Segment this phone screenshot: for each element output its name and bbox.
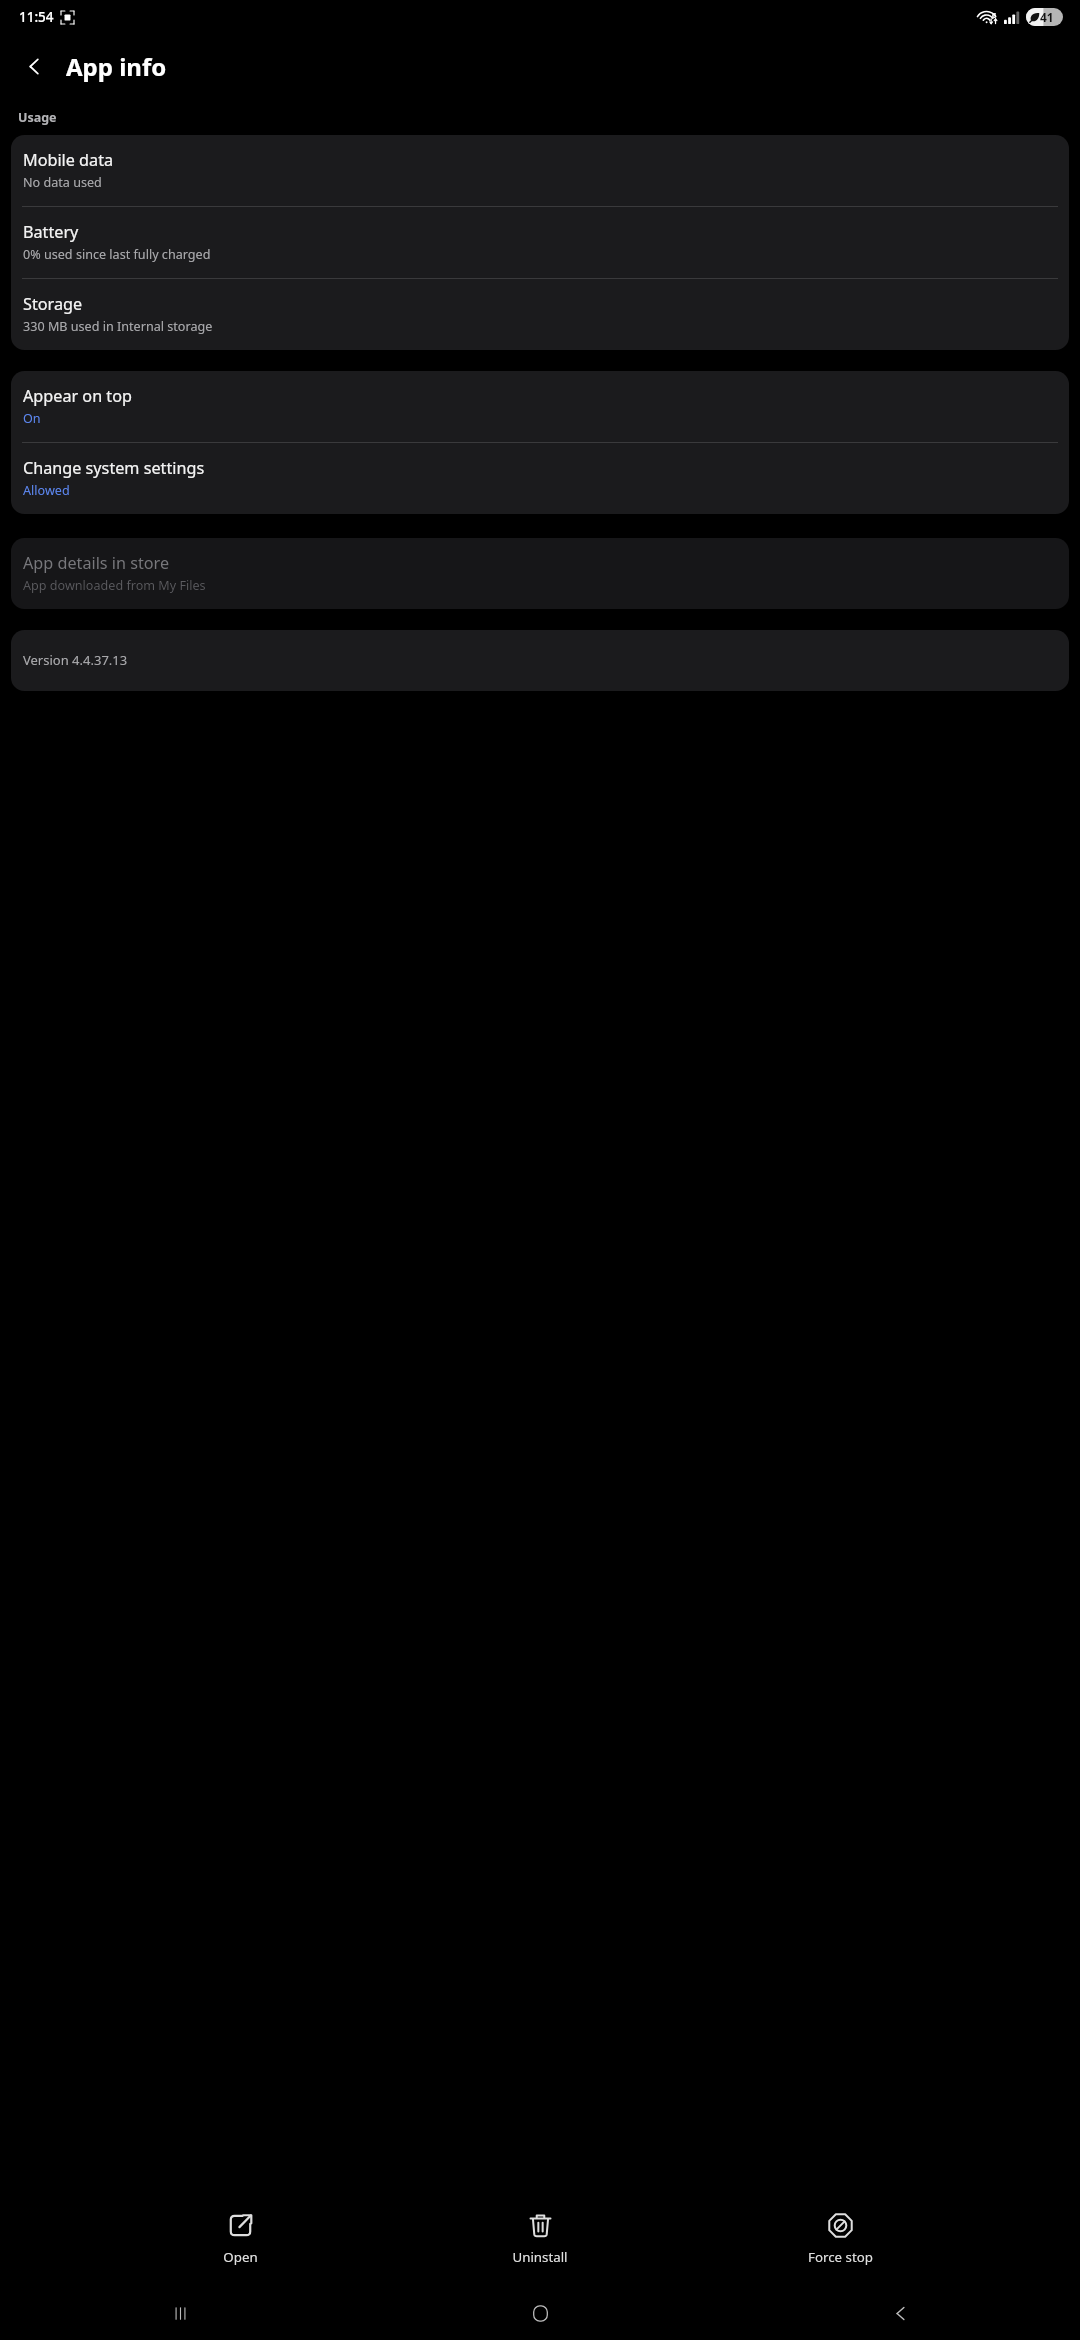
button[interactable]: Storage	[11, 279, 1069, 350]
staticText: 330 MB used in Internal storage	[23, 318, 213, 335]
staticText: Uninstall	[512, 2248, 568, 2266]
staticText: On	[23, 410, 41, 427]
staticText: 6	[992, 10, 997, 20]
staticText: Open	[223, 2248, 258, 2266]
staticText: Version 4.4.37.13	[23, 651, 128, 669]
staticText: Battery	[23, 221, 79, 243]
staticText: App info	[66, 50, 167, 83]
staticText: 41	[1040, 9, 1054, 25]
button[interactable]: Change system settings	[11, 443, 1069, 514]
button[interactable]: Mobile data	[11, 135, 1069, 206]
button[interactable]: Home	[360, 2286, 720, 2340]
button[interactable]: Force stop	[780, 2206, 900, 2272]
staticText: Mobile data	[23, 149, 114, 171]
button[interactable]: Open	[180, 2206, 300, 2272]
button[interactable]: App details in store	[11, 538, 1069, 609]
button[interactable]: Back	[720, 2286, 1080, 2340]
button[interactable]: Appear on top	[11, 371, 1069, 442]
button[interactable]: Recent apps	[0, 2286, 360, 2340]
staticText: Force stop	[808, 2248, 873, 2266]
staticText: No data used	[23, 174, 102, 191]
staticText: App downloaded from My Files	[23, 577, 206, 594]
staticText: 0% used since last fully charged	[23, 246, 211, 263]
staticText: Appear on top	[23, 385, 132, 407]
staticText: 11:54	[19, 8, 54, 26]
staticText: App details in store	[23, 552, 170, 574]
staticText: Allowed	[23, 482, 70, 499]
button[interactable]: Uninstall	[480, 2206, 600, 2272]
button[interactable]: Back	[12, 44, 56, 88]
staticText: Usage	[18, 109, 57, 126]
staticText: Storage	[23, 293, 83, 315]
button[interactable]: Battery	[11, 207, 1069, 278]
button[interactable]: Version 4.4.37.13	[11, 630, 1069, 691]
staticText: Change system settings	[23, 457, 205, 479]
